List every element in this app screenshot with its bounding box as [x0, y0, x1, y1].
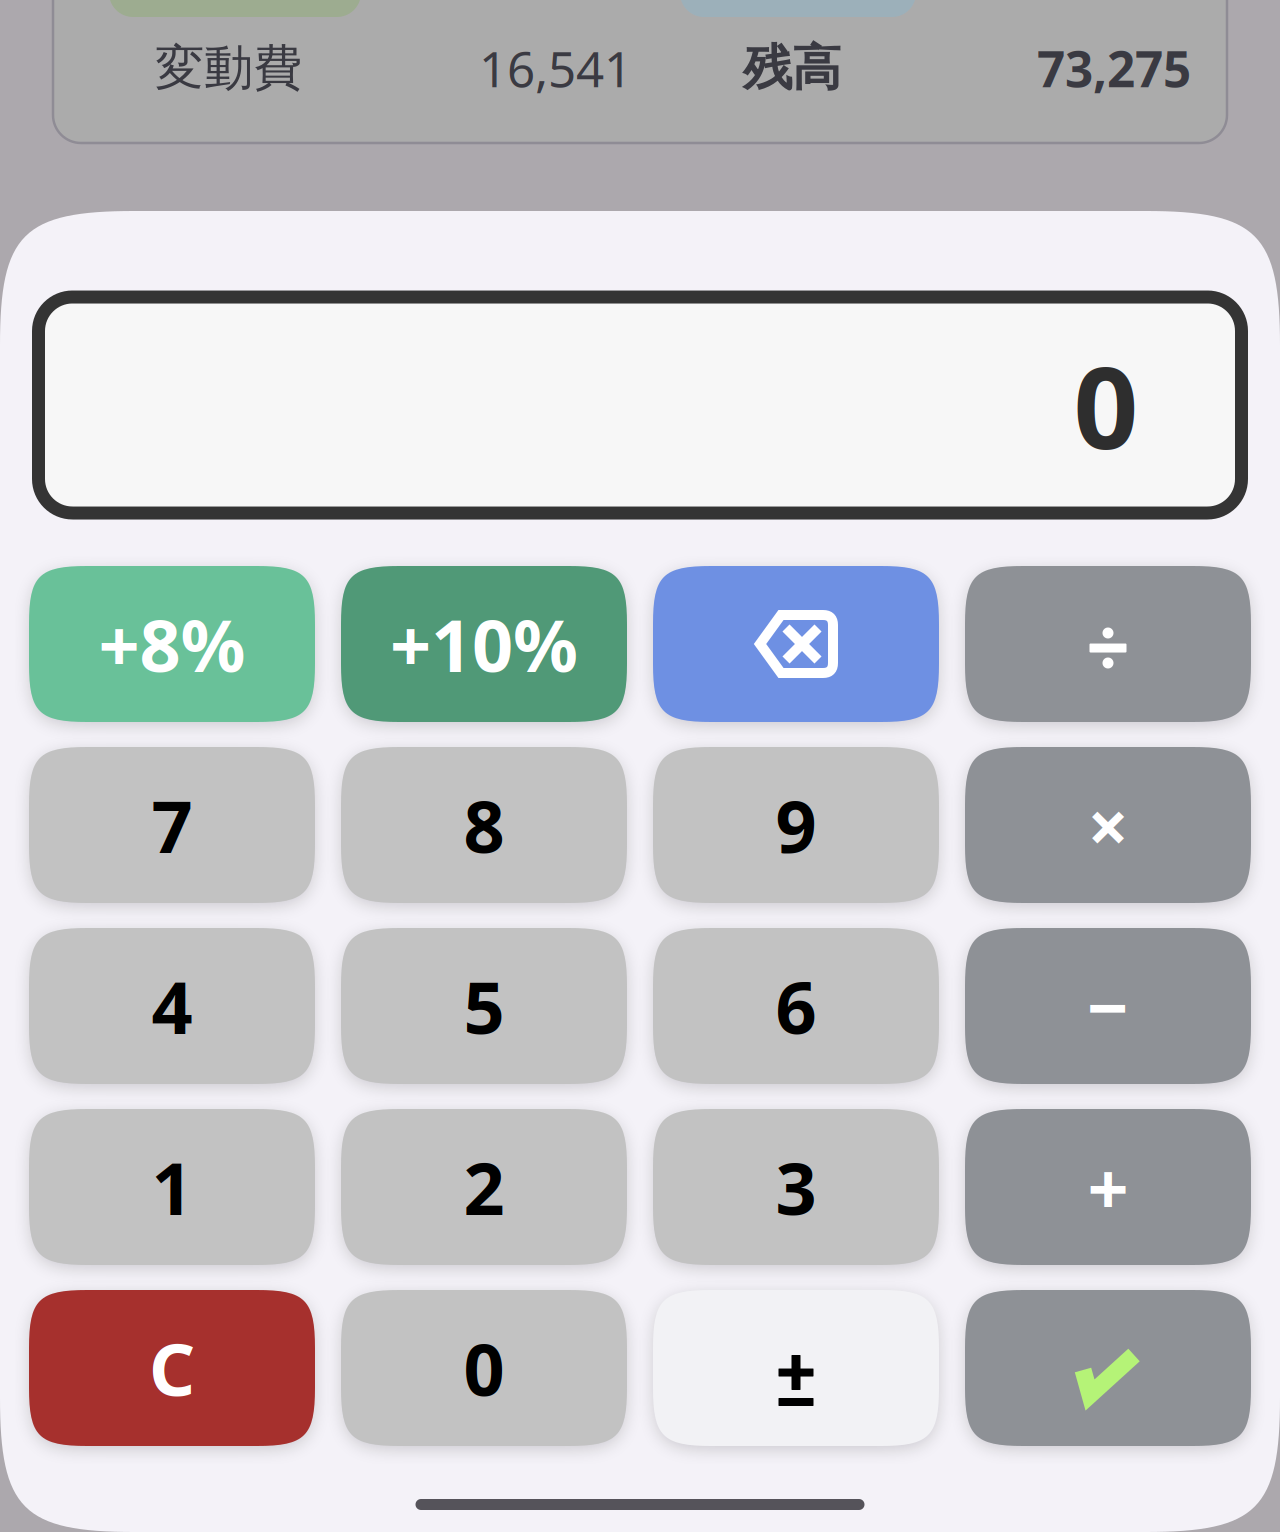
button[interactable]: C [29, 1290, 315, 1446]
staticText: 残高 [743, 38, 841, 98]
staticText: 5 [463, 958, 504, 1054]
staticText: 8 [463, 777, 504, 873]
staticText: 0 [463, 1320, 504, 1416]
staticText: 変動費 [155, 38, 302, 98]
staticText: 2 [463, 1139, 504, 1235]
button[interactable] [653, 1290, 939, 1446]
staticText: 4 [151, 958, 192, 1054]
button[interactable]: 6 [653, 928, 939, 1084]
staticText: 73,275 [1037, 35, 1191, 101]
staticText: × [1087, 777, 1128, 873]
staticText: +10% [390, 596, 578, 692]
button[interactable]: 3 [653, 1109, 939, 1265]
staticText: 7 [151, 777, 192, 873]
button[interactable]: 5 [341, 928, 627, 1084]
button[interactable]: 9 [653, 747, 939, 903]
button[interactable] [653, 566, 939, 722]
staticText: 1 [151, 1139, 192, 1235]
staticText: 3 [775, 1139, 816, 1235]
staticText: + [1087, 1139, 1128, 1235]
button[interactable]: 2 [341, 1109, 627, 1265]
button[interactable]: +10% [341, 566, 627, 722]
button[interactable]: 8 [341, 747, 627, 903]
staticText: C [149, 1320, 195, 1416]
staticText: − [1087, 958, 1129, 1054]
staticText: +8% [98, 596, 245, 692]
button[interactable]: × [965, 747, 1251, 903]
button[interactable]: − [965, 928, 1251, 1084]
staticText: 9 [775, 777, 816, 873]
staticText: 6 [775, 958, 816, 1054]
button[interactable]: +8% [29, 566, 315, 722]
button[interactable]: 7 [29, 747, 315, 903]
button[interactable]: 1 [29, 1109, 315, 1265]
button[interactable]: 0 [341, 1290, 627, 1446]
button[interactable] [965, 1290, 1251, 1446]
button[interactable]: 4 [29, 928, 315, 1084]
staticText: 16,541 [479, 35, 632, 101]
staticText: 0 [1073, 330, 1138, 480]
button[interactable] [965, 566, 1251, 722]
button[interactable]: + [965, 1109, 1251, 1265]
